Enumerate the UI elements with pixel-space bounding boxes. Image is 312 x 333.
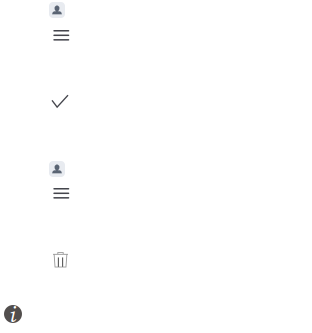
- button[interactable]: Done: [52, 95, 68, 107]
- button[interactable]: Menu: [50, 182, 73, 205]
- button[interactable]: Delete: [53, 252, 68, 268]
- button[interactable]: Account: [49, 2, 65, 18]
- staticText: i: [9, 298, 16, 330]
- button[interactable]: Account: [49, 161, 65, 177]
- button[interactable]: Info: [4, 305, 22, 323]
- button[interactable]: Menu: [50, 24, 73, 47]
